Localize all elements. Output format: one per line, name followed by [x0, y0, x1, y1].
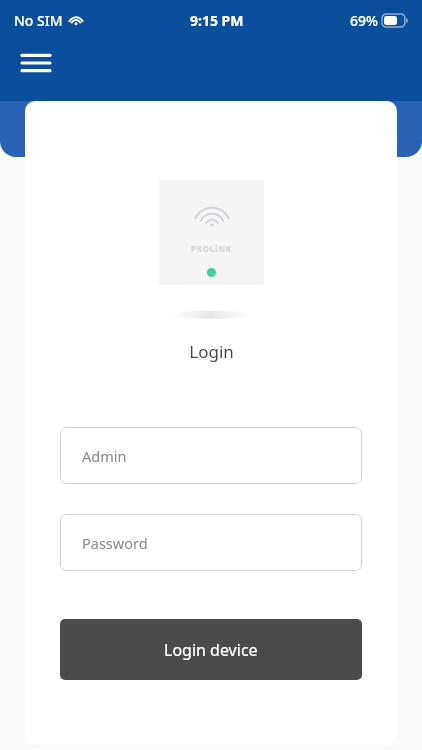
button[interactable]: Password	[60, 514, 362, 571]
staticText: No SIM	[14, 11, 63, 30]
staticText: 69%	[350, 11, 378, 30]
button[interactable]: Login device	[60, 619, 362, 680]
staticText: Admin	[82, 446, 127, 466]
staticText: Login	[189, 340, 234, 363]
staticText: Password	[82, 533, 148, 553]
button[interactable]: Menu	[12, 41, 60, 85]
staticText: PROLiNK	[191, 243, 232, 254]
button[interactable]: Admin	[60, 427, 362, 484]
staticText: 9:15 PM	[190, 11, 244, 30]
staticText: Login device	[164, 639, 258, 661]
